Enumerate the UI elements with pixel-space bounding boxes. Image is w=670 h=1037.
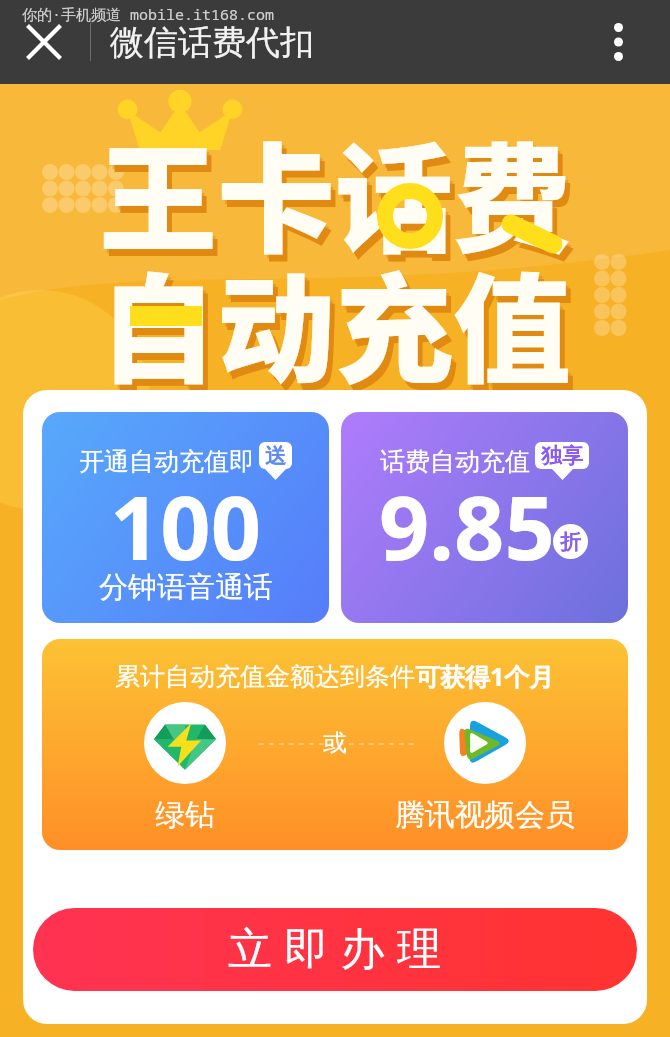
staticText: 累计自动充值金额达到条件 [115,661,415,692]
button[interactable]: More options [575,0,661,84]
staticText: 9.85 [379,466,555,586]
staticText: 可获得1个月 [415,659,555,693]
staticText: 王卡话费 [104,113,577,284]
button[interactable]: 话费自动充值 [341,412,628,623]
staticText: 话费自动充值 [380,446,530,477]
staticText: 分钟语音通话 [99,569,273,606]
button[interactable]: Close [9,0,79,84]
button[interactable]: 开通自动充值即 [42,412,329,623]
staticText: 微信话费代扣 [110,21,314,64]
staticText: 你的·手机频道 mobile.it168.com [22,4,275,24]
staticText: 或 [323,728,347,758]
staticText: 100 [110,466,262,586]
staticText: 腾讯视频会员 [395,796,575,834]
staticText: 独享 [541,443,583,469]
button[interactable]: 累计自动充值金额达到条件 [42,639,628,850]
staticText: 王卡话费 [102,110,575,281]
staticText: 送 [265,443,286,469]
staticText: 王卡话费 [99,106,572,277]
staticText: 开通自动充值即 [79,446,254,477]
staticText: 折 [560,529,581,555]
staticText: 自动充值 [104,243,577,414]
staticText: 立即办理 [228,922,454,977]
button[interactable]: 立即办理 [33,908,637,991]
staticText: 自动充值 [102,240,575,411]
staticText: 绿钻 [155,796,215,834]
staticText: 自动充值 [99,236,572,407]
